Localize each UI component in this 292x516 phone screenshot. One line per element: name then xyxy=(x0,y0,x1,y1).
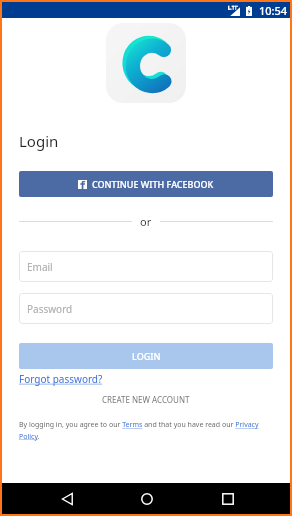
button[interactable]: Password xyxy=(19,293,273,324)
staticText: or xyxy=(140,214,152,229)
staticText: 10:54 xyxy=(259,3,288,18)
staticText: CONTINUE WITH FACEBOOK xyxy=(92,178,214,190)
staticText: By logging in, you agree to our Terms an… xyxy=(19,420,273,441)
button[interactable]: CONTINUE WITH FACEBOOK xyxy=(19,171,273,197)
staticText: Password xyxy=(27,302,73,316)
button[interactable]: Forgot password? xyxy=(19,372,103,386)
button[interactable]: LOGIN xyxy=(19,343,273,369)
staticText: LOGIN xyxy=(132,350,161,362)
button[interactable]: CREATE NEW ACCOUNT xyxy=(102,394,190,405)
staticText: Login xyxy=(19,131,59,151)
button[interactable]: Recents xyxy=(215,486,241,512)
button[interactable]: Back xyxy=(54,486,80,512)
staticText: Email xyxy=(27,260,53,274)
button[interactable]: Home xyxy=(134,486,160,512)
button[interactable]: Email xyxy=(19,251,273,282)
